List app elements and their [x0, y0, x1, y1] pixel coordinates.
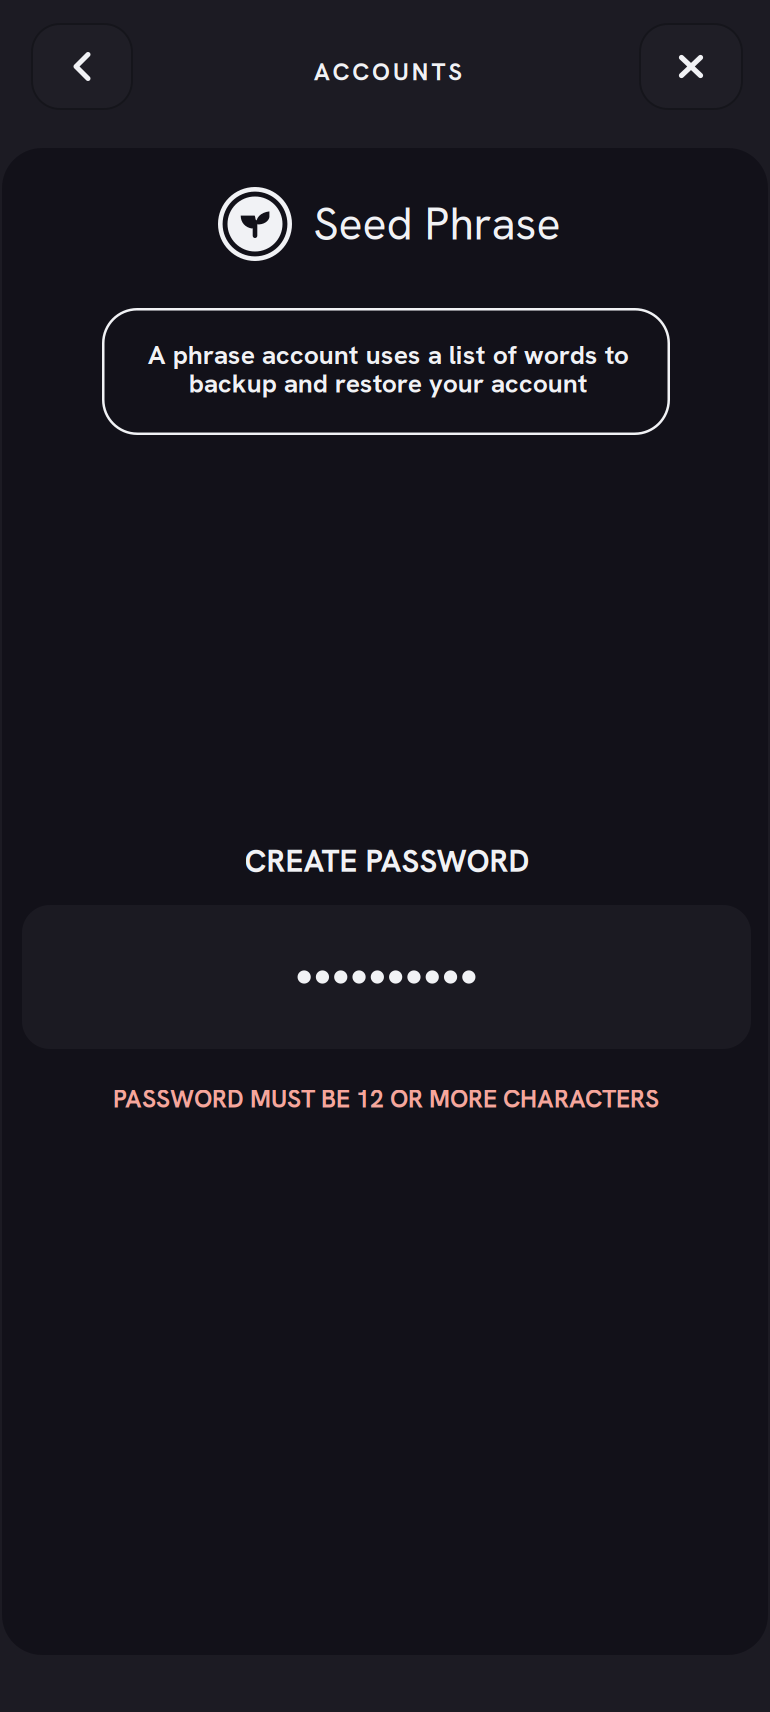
staticText: PASSWORD MUST BE 12 OR MORE CHARACTERS — [113, 1083, 659, 1115]
staticText: A C C O U N T S — [314, 56, 462, 88]
button[interactable]: Close — [640, 24, 742, 109]
staticText: Seed Phrase — [313, 195, 560, 253]
button[interactable]: Back — [32, 24, 132, 109]
staticText: CREATE PASSWORD — [244, 841, 529, 881]
staticText: A phrase account uses a list of words to… — [147, 337, 628, 400]
